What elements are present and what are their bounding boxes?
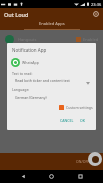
staticText: Out Loud — [4, 11, 29, 18]
button[interactable]: OK — [78, 117, 87, 124]
staticText: Notification App — [12, 47, 47, 53]
staticText: Enabled Apps — [39, 21, 65, 26]
staticText: WhatsApp — [22, 60, 39, 65]
staticText: Read both ticker and content text — [15, 78, 70, 83]
staticText: Enabled — [83, 37, 99, 42]
button[interactable]: Recents — [75, 171, 86, 182]
staticText: OK — [80, 118, 85, 123]
staticText: ON/OFF — [76, 159, 90, 164]
button[interactable]: Settings — [91, 9, 101, 19]
button[interactable]: Back — [18, 171, 29, 182]
staticText: 23:36 — [91, 2, 102, 7]
staticText: Language: — [12, 87, 30, 92]
button[interactable]: Toggle service — [88, 152, 102, 166]
button[interactable]: Custom settings — [59, 105, 93, 110]
button[interactable]: CANCEL — [58, 117, 76, 124]
staticText: Custom settings — [66, 105, 93, 110]
staticText: Text to read: — [12, 71, 33, 76]
button[interactable]: Home — [46, 171, 57, 182]
staticText: German (Germany) — [15, 95, 47, 100]
staticText: CANCEL — [60, 118, 74, 123]
staticText: Hangouts — [18, 37, 37, 42]
